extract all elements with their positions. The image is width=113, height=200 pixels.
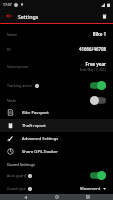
button[interactable]: Movement — [80, 186, 106, 191]
button[interactable]: Recent apps — [81, 194, 95, 200]
staticText: 17:37 — [3, 2, 12, 7]
button[interactable]: ID — [0, 43, 113, 55]
staticText: Free year — [85, 61, 106, 67]
staticText: Subscription — [7, 64, 79, 69]
staticText: Name — [7, 32, 92, 37]
button[interactable]: Tracking active — [0, 80, 113, 91]
staticText: Share GPS-Tracker — [22, 149, 58, 155]
staticText: Guard Settings — [7, 162, 35, 167]
staticText: Mode — [7, 98, 17, 103]
button[interactable]: Theft report — [0, 119, 113, 132]
button[interactable] — [90, 171, 106, 180]
staticText: Advanced Settings — [22, 136, 59, 142]
staticText: Bike Passport — [22, 110, 49, 116]
button[interactable]: Mode — [0, 95, 113, 105]
staticText: Movement — [80, 186, 101, 191]
button[interactable]: Subscription — [0, 58, 113, 75]
staticText: Guard type — [7, 186, 26, 191]
button[interactable]: Auto guard — [0, 170, 113, 181]
button[interactable]: Delete — [99, 11, 110, 22]
staticText: Tracking active — [7, 83, 33, 88]
button[interactable]: Bike Passport — [0, 106, 113, 119]
button[interactable]: Home — [50, 194, 64, 200]
staticText: ID — [7, 47, 79, 52]
button[interactable]: Back — [4, 11, 14, 21]
button[interactable]: Share GPS-Tracker — [0, 145, 113, 158]
staticText: Bike 1 — [92, 31, 106, 37]
button[interactable] — [90, 96, 106, 105]
staticText: Auto guard — [7, 173, 26, 178]
button[interactable]: Back — [18, 194, 32, 200]
staticText: 41666/46708 — [79, 46, 106, 52]
button[interactable]: Advanced Settings — [0, 132, 113, 145]
button[interactable]: Guard type — [0, 183, 113, 194]
button[interactable] — [90, 81, 106, 90]
button[interactable]: Name — [0, 28, 113, 40]
staticText: Ends May 17, 2023 — [79, 68, 106, 72]
staticText: Settings — [18, 13, 39, 20]
staticText: Theft report — [22, 123, 46, 129]
